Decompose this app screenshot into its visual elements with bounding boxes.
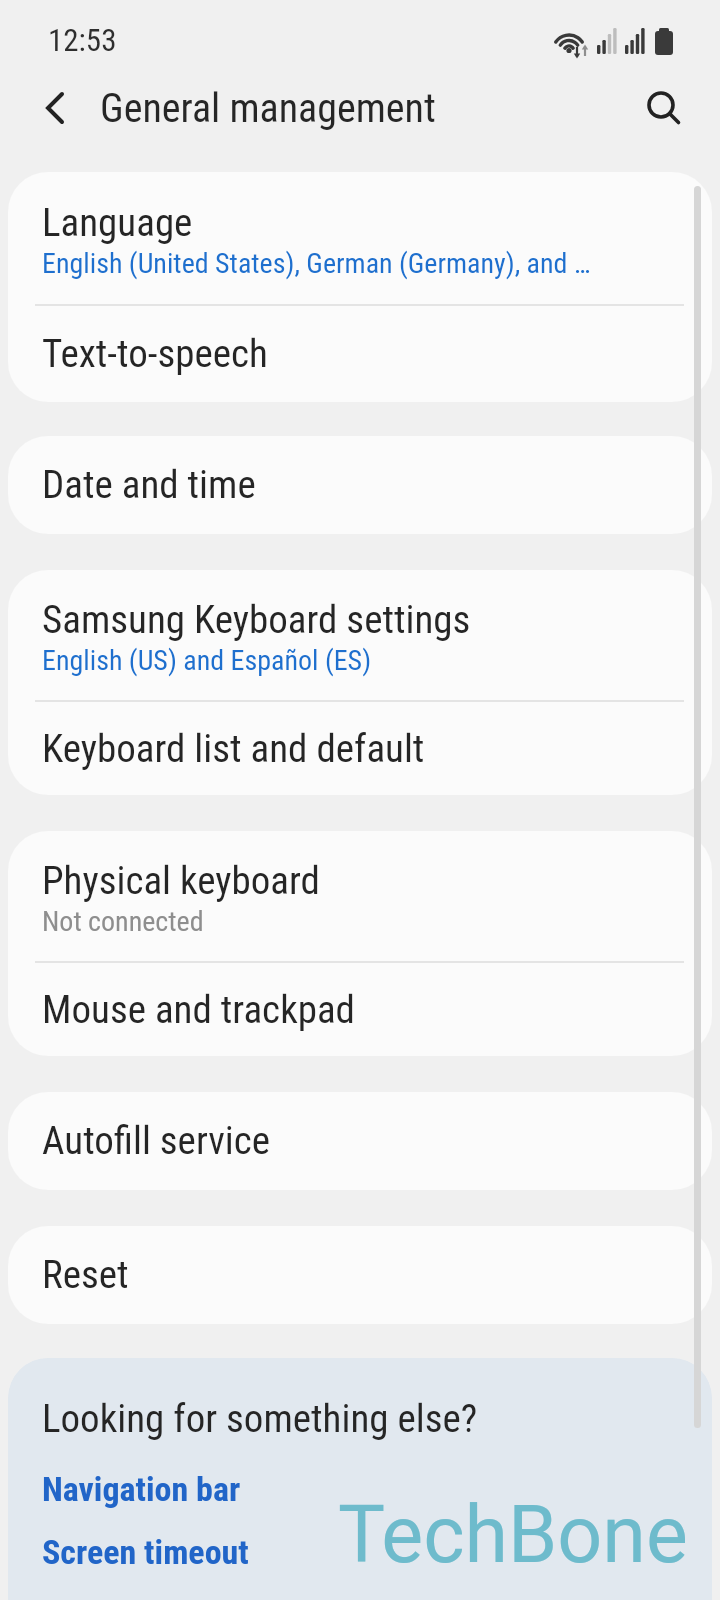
staticText: 12:53 bbox=[48, 22, 117, 58]
staticText: Autofill service bbox=[42, 1118, 271, 1164]
button[interactable]: Keyboard list and default bbox=[8, 702, 712, 795]
staticText: Screen timeout bbox=[42, 1532, 249, 1572]
button[interactable]: Physical keyboard bbox=[8, 831, 712, 961]
staticText: Keyboard list and default bbox=[42, 726, 425, 772]
button[interactable]: Language bbox=[8, 172, 712, 304]
button[interactable]: Navigation bar bbox=[42, 1469, 241, 1509]
button[interactable] bbox=[30, 83, 80, 133]
button[interactable]: Samsung Keyboard settings bbox=[8, 570, 712, 700]
button[interactable]: Screen timeout bbox=[42, 1532, 249, 1572]
staticText: TechBone bbox=[338, 1489, 688, 1582]
staticText: Physical keyboard bbox=[42, 858, 320, 904]
staticText: Samsung Keyboard settings bbox=[42, 597, 471, 643]
staticText: English (United States), German (Germany… bbox=[42, 247, 591, 280]
staticText: Language bbox=[42, 200, 193, 246]
staticText: Not connected bbox=[42, 905, 204, 938]
button[interactable]: Date and time bbox=[8, 436, 712, 534]
staticText: Mouse and trackpad bbox=[42, 987, 355, 1033]
staticText: General management bbox=[100, 85, 436, 132]
staticText: Reset bbox=[42, 1252, 129, 1298]
staticText: Text-to-speech bbox=[42, 331, 268, 377]
button[interactable]: Text-to-speech bbox=[8, 306, 712, 402]
button[interactable]: Reset bbox=[8, 1226, 712, 1324]
button[interactable]: Autofill service bbox=[8, 1092, 712, 1190]
staticText: Looking for something else? bbox=[42, 1396, 478, 1442]
staticText: Navigation bar bbox=[42, 1469, 241, 1509]
button[interactable] bbox=[636, 80, 692, 136]
button[interactable]: Mouse and trackpad bbox=[8, 963, 712, 1056]
staticText: English (US) and Español (ES) bbox=[42, 644, 372, 677]
staticText: Date and time bbox=[42, 462, 256, 508]
